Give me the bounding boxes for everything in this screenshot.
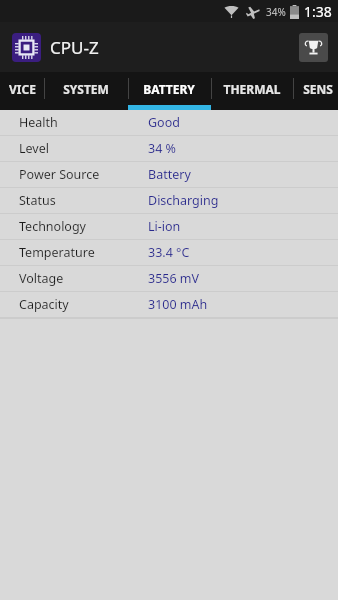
button[interactable]: Temperature — [0, 240, 338, 266]
staticText: 34% — [266, 5, 286, 19]
button[interactable]: Health — [0, 110, 338, 136]
button[interactable]: Level — [0, 136, 338, 162]
staticText: 1:38 — [304, 2, 332, 21]
staticText: BATTERY — [143, 81, 195, 97]
staticText: Li-ion — [148, 218, 181, 235]
staticText: VICE — [9, 81, 36, 97]
button[interactable]: Technology — [0, 214, 338, 240]
button[interactable]: BATTERY — [128, 72, 210, 105]
staticText: SENS — [303, 81, 333, 97]
button[interactable]: Voltage — [0, 266, 338, 292]
staticText: THERMAL — [223, 81, 281, 97]
button[interactable]: SENS — [293, 72, 338, 105]
staticText: Technology — [19, 218, 86, 235]
staticText: Temperature — [19, 244, 95, 261]
staticText: Health — [19, 114, 58, 131]
button[interactable]: Power Source — [0, 162, 338, 188]
staticText: Status — [19, 192, 56, 209]
staticText: Level — [19, 140, 49, 157]
staticText: CPU-Z — [50, 36, 99, 59]
staticText: 3100 mAh — [148, 296, 208, 313]
button[interactable]: Status — [0, 188, 338, 214]
staticText: Voltage — [19, 270, 64, 287]
staticText: Battery — [148, 166, 191, 183]
staticText: Capacity — [19, 296, 69, 313]
button[interactable]: THERMAL — [211, 72, 293, 105]
staticText: Good — [148, 114, 180, 131]
staticText: 3556 mV — [148, 270, 200, 287]
button[interactable]: Benchmark ranking — [299, 33, 328, 62]
staticText: SYSTEM — [63, 81, 109, 97]
staticText: 34 % — [148, 140, 176, 157]
staticText: Power Source — [19, 166, 100, 183]
button[interactable]: VICE — [0, 72, 44, 105]
button[interactable]: CPU-Z — [12, 33, 99, 62]
button[interactable]: SYSTEM — [44, 72, 128, 105]
button[interactable]: Capacity — [0, 292, 338, 318]
staticText: 33.4 °C — [148, 244, 190, 261]
staticText: Discharging — [148, 192, 219, 209]
